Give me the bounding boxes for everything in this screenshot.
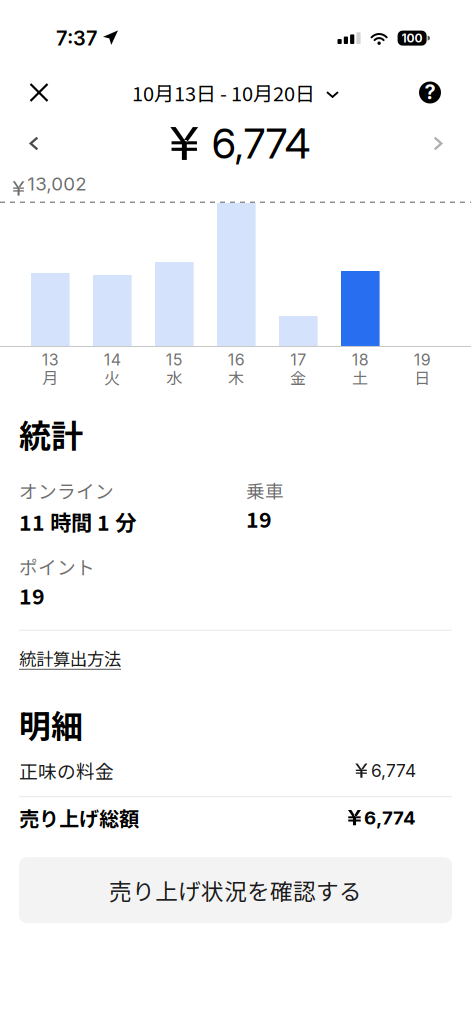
staticText: 19 xyxy=(246,503,272,534)
staticText: 火 xyxy=(104,365,120,388)
staticText: 統計 xyxy=(19,410,83,457)
button[interactable]: 閉じる xyxy=(17,72,61,112)
staticText: オンライン xyxy=(19,477,114,504)
staticText: 15 xyxy=(166,350,183,369)
staticText: 売り上げ状況を確認する xyxy=(109,874,362,906)
staticText: 乗車 xyxy=(246,477,284,504)
staticText: 19 xyxy=(414,350,431,369)
staticText: 19 xyxy=(19,580,45,611)
staticText: 6,774 xyxy=(364,806,416,829)
staticText: 月 xyxy=(42,365,58,388)
button[interactable]: 統計算出方法 xyxy=(19,641,121,675)
staticText: 13 xyxy=(42,350,59,369)
button[interactable]: 売り上げ状況を確認する xyxy=(19,857,452,923)
staticText: 正味の料金 xyxy=(19,757,114,784)
staticText: 16 xyxy=(228,350,245,369)
staticText: 水 xyxy=(166,365,182,388)
staticText: 11 時間 1 分 xyxy=(19,506,136,537)
staticText: 100 xyxy=(402,31,423,45)
staticText: 土 xyxy=(352,365,368,388)
staticText: 金 xyxy=(290,365,306,388)
staticText: 17 xyxy=(290,350,306,369)
staticText: 日 xyxy=(414,365,430,388)
staticText: 14 xyxy=(104,350,121,369)
staticText: 7:37 xyxy=(56,26,97,50)
staticText: 6,774 xyxy=(371,760,416,781)
staticText: 売り上げ総額 xyxy=(19,803,139,832)
staticText: 13,002 xyxy=(27,172,86,195)
staticText: ? xyxy=(424,80,435,104)
staticText: ポイント xyxy=(19,553,95,580)
staticText: 6,774 xyxy=(212,118,311,168)
staticText: 統計算出方法 xyxy=(19,646,121,671)
staticText: 明細 xyxy=(19,701,83,747)
staticText: 18 xyxy=(352,350,369,369)
button[interactable]: 次の週 xyxy=(418,121,458,165)
button[interactable]: ヘルプ xyxy=(408,72,452,112)
staticText: 木 xyxy=(228,365,244,388)
staticText: 10月13日 - 10月20日 xyxy=(132,78,315,107)
button[interactable]: 前の週 xyxy=(14,121,54,165)
